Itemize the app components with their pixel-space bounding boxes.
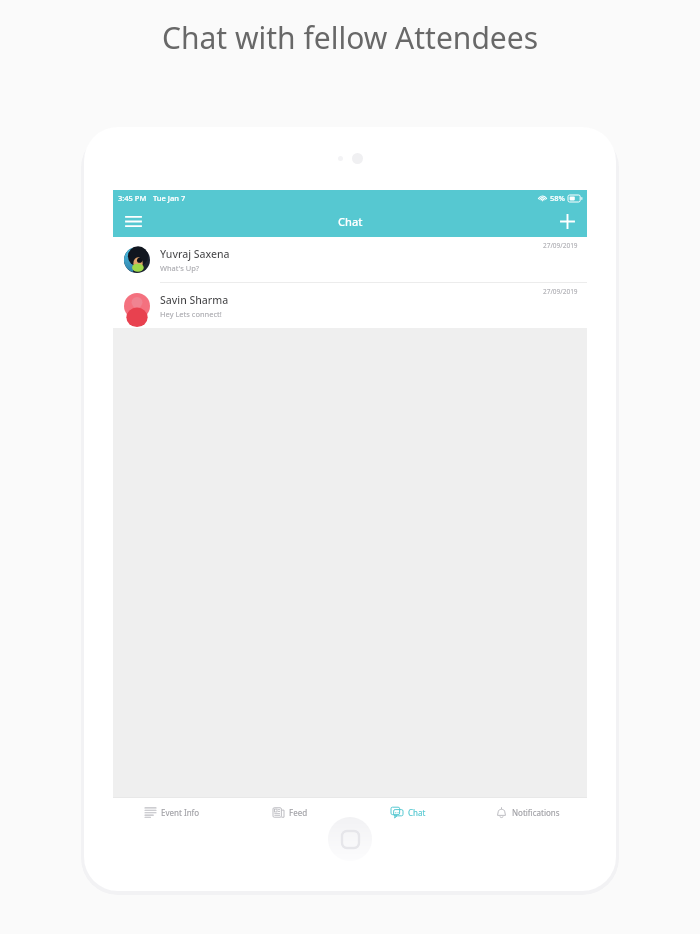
- button[interactable]: New chat: [547, 205, 587, 237]
- button[interactable]: Notifications: [468, 797, 587, 827]
- staticText: Chat with fellow Attendees: [162, 17, 539, 58]
- staticText: Chat: [408, 807, 426, 818]
- staticText: 3:45 PM: [118, 193, 147, 203]
- staticText: 27/09/2019: [543, 287, 578, 296]
- staticText: What's Up?: [160, 263, 200, 273]
- staticText: 27/09/2019: [543, 241, 578, 250]
- staticText: Feed: [289, 807, 308, 818]
- button[interactable]: Feed: [231, 797, 349, 827]
- staticText: Hey Lets connect!: [160, 309, 222, 319]
- staticText: Yuvraj Saxena: [160, 247, 230, 261]
- button[interactable]: Menu: [113, 205, 153, 237]
- button[interactable]: Chat: [349, 797, 468, 827]
- staticText: Savin Sharma: [160, 293, 229, 307]
- staticText: 58%: [550, 193, 565, 203]
- button[interactable]: Savin Sharma: [113, 283, 587, 328]
- staticText: Tue Jan 7: [153, 193, 186, 203]
- button[interactable]: Event Info: [113, 797, 231, 827]
- staticText: Event Info: [161, 807, 200, 818]
- staticText: Notifications: [512, 807, 560, 818]
- button[interactable]: Yuvraj Saxena: [113, 237, 587, 282]
- staticText: Chat: [338, 214, 363, 229]
